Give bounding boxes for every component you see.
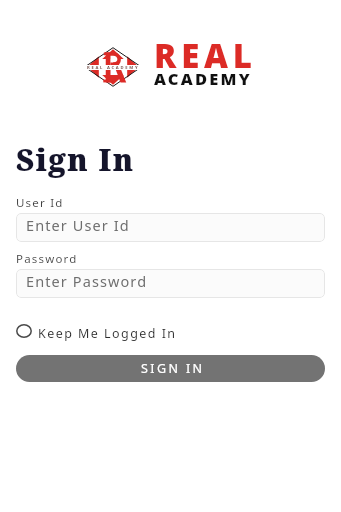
staticText: ACADEMY [154, 67, 252, 89]
staticText: SIGN IN [141, 360, 205, 377]
staticText: REAL [154, 33, 257, 78]
other: Real Academy logo [84, 47, 142, 87]
staticText: Enter Password [26, 271, 148, 291]
staticText: REAL ACADEMY [87, 65, 140, 70]
button[interactable]: Enter User Id [16, 213, 325, 242]
button[interactable]: Enter Password [16, 269, 325, 298]
staticText: Sign In [16, 139, 135, 180]
staticText: Keep Me Logged In [38, 325, 177, 342]
button[interactable]: Keep Me Logged In [16, 324, 177, 343]
staticText: Enter User Id [26, 215, 130, 235]
staticText: User Id [16, 195, 64, 211]
button[interactable]: SIGN IN [16, 355, 325, 382]
staticText: Password [16, 251, 78, 267]
